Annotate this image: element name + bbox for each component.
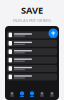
staticText: SAVE (21, 4, 43, 16)
button[interactable]: Tab (7, 92, 17, 96)
button[interactable]: Tab (17, 91, 27, 97)
staticText: + (51, 28, 56, 39)
button[interactable]: Add (48, 28, 58, 39)
staticText: FILES AS PDF OR IMG (13, 18, 51, 23)
button[interactable]: Tab (37, 92, 47, 96)
button[interactable]: Tab (47, 92, 57, 96)
button[interactable]: Tab (27, 91, 37, 97)
